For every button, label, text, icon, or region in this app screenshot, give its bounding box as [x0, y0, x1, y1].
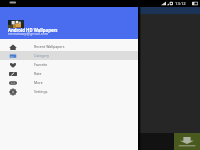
button[interactable]: Favorite: [0, 60, 138, 69]
staticText: Favorite: [34, 62, 48, 67]
staticText: Category: [34, 53, 49, 58]
staticText: Settings: [34, 89, 48, 94]
staticText: Android HD Wallpapers: [8, 27, 58, 33]
button[interactable]: Recent Wallpapers: [0, 42, 138, 51]
staticText: 13:12: [175, 1, 186, 7]
staticText: More: [34, 80, 43, 85]
button[interactable]: Category: [0, 51, 138, 60]
button[interactable]: More: [0, 78, 138, 87]
staticText: Recent Wallpapers: [34, 44, 65, 49]
button[interactable]: Settings: [0, 87, 138, 96]
staticText: rennatawp@gmail.com: [8, 31, 49, 36]
button[interactable]: Rate: [0, 69, 138, 78]
staticText: Rate: [34, 71, 42, 76]
